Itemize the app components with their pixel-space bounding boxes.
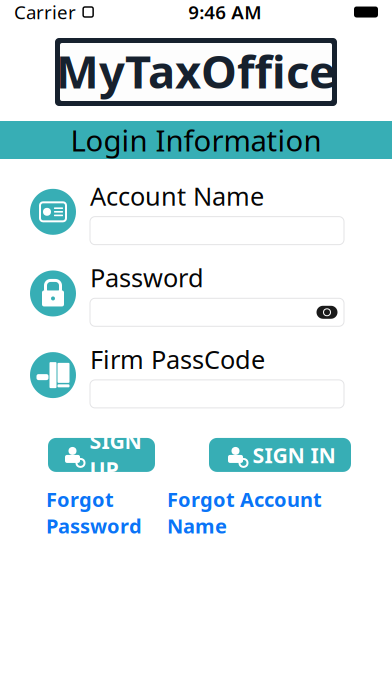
staticText: Carrier xyxy=(14,0,76,24)
staticText: SIGN UP xyxy=(89,427,141,483)
button[interactable]: SIGN IN xyxy=(209,438,351,472)
button[interactable]: Show password xyxy=(310,298,344,326)
button[interactable]: SIGN UP xyxy=(48,438,155,472)
staticText: Account Name xyxy=(90,179,264,213)
staticText: Firm PassCode xyxy=(90,342,265,376)
button[interactable]: Forgot Account Name xyxy=(167,486,322,539)
staticText: MyTaxOffice xyxy=(56,41,336,101)
staticText: Forgot Account Name xyxy=(167,486,322,539)
staticText: 9:46 AM xyxy=(188,0,261,24)
staticText: Password xyxy=(90,261,204,294)
staticText: SIGN IN xyxy=(252,441,335,469)
staticText: Forgot Password xyxy=(46,486,142,539)
staticText: Login Information xyxy=(70,120,321,159)
button[interactable]: Forgot Password xyxy=(46,486,142,539)
